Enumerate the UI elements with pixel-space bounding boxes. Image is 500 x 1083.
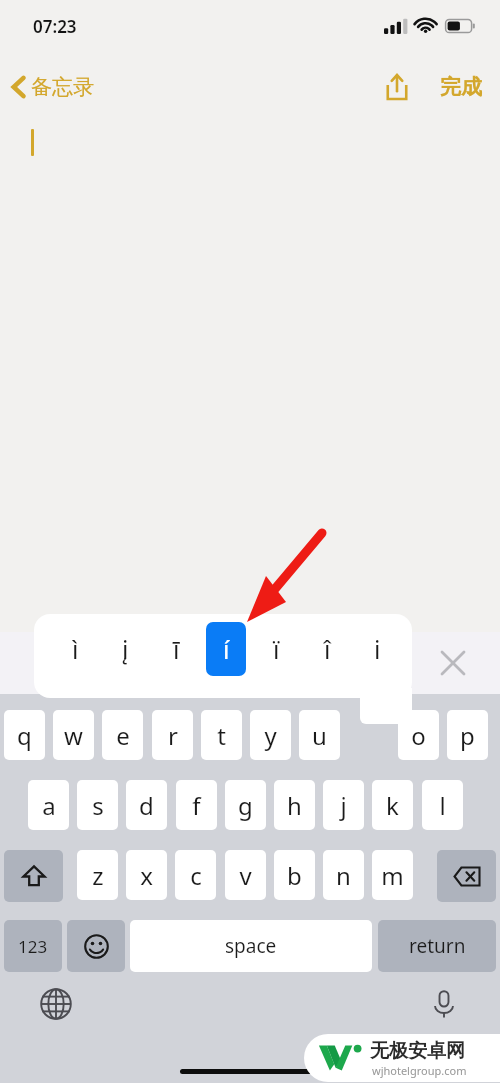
button[interactable]: Checklist bbox=[208, 644, 247, 683]
button[interactable]: k bbox=[372, 780, 413, 830]
button[interactable]: c bbox=[175, 850, 216, 900]
button[interactable]: Switch keyboard bbox=[36, 984, 76, 1024]
staticText: q bbox=[17, 719, 32, 752]
staticText: j bbox=[340, 789, 347, 822]
staticText: 完成 bbox=[440, 74, 482, 100]
button[interactable]: Table bbox=[56, 645, 98, 681]
button[interactable]: 完成 bbox=[436, 70, 486, 104]
staticText: f bbox=[192, 789, 201, 822]
staticText: k bbox=[386, 789, 399, 822]
staticText: o bbox=[411, 719, 426, 752]
staticText: s bbox=[92, 789, 104, 822]
button[interactable]: Share bbox=[380, 68, 414, 106]
staticText: u bbox=[312, 719, 327, 752]
button[interactable]: ī bbox=[156, 622, 196, 676]
staticText: ì bbox=[72, 632, 79, 666]
staticText: í bbox=[223, 632, 230, 666]
staticText: į bbox=[122, 632, 129, 666]
staticText: 07:23 bbox=[33, 15, 77, 38]
button[interactable]: space bbox=[130, 920, 372, 972]
button[interactable]: y bbox=[250, 710, 291, 760]
button[interactable]: h bbox=[274, 780, 315, 830]
staticText: z bbox=[92, 859, 104, 892]
button[interactable]: w bbox=[53, 710, 94, 760]
staticText: ï bbox=[273, 632, 280, 666]
button[interactable]: l bbox=[422, 780, 463, 830]
staticText: v bbox=[239, 859, 252, 892]
staticText: e bbox=[116, 719, 130, 752]
button[interactable]: s bbox=[77, 780, 118, 830]
staticText: wjhotelgroup.com bbox=[372, 1063, 467, 1078]
staticText: x bbox=[140, 859, 153, 892]
button[interactable]: Shift bbox=[4, 850, 63, 902]
button[interactable]: Dictation bbox=[424, 984, 464, 1024]
button[interactable]: Markup bbox=[356, 643, 396, 683]
staticText: w bbox=[64, 719, 83, 752]
button[interactable]: t bbox=[201, 710, 242, 760]
button[interactable]: v bbox=[225, 850, 266, 900]
button[interactable]: q bbox=[4, 710, 45, 760]
button[interactable]: Emoji bbox=[67, 920, 125, 972]
button[interactable]: u bbox=[299, 710, 340, 760]
button[interactable]: e bbox=[102, 710, 143, 760]
button[interactable]: r bbox=[152, 710, 193, 760]
staticText: 123 bbox=[18, 935, 48, 958]
button[interactable]: i bbox=[357, 622, 397, 676]
button[interactable]: í bbox=[206, 622, 246, 676]
button[interactable]: n bbox=[323, 850, 364, 900]
button[interactable]: b bbox=[274, 850, 315, 900]
staticText: i bbox=[374, 632, 381, 666]
button[interactable]: į bbox=[105, 622, 145, 676]
staticText: l bbox=[439, 789, 446, 822]
button[interactable]: p bbox=[447, 710, 488, 760]
staticText: n bbox=[336, 859, 351, 892]
button[interactable]: m bbox=[372, 850, 413, 900]
button[interactable] bbox=[348, 710, 389, 760]
staticText: t bbox=[217, 719, 226, 752]
button[interactable]: 备忘录 bbox=[8, 70, 98, 104]
staticText: r bbox=[168, 719, 178, 752]
button[interactable]: return bbox=[378, 920, 496, 972]
button[interactable]: d bbox=[126, 780, 167, 830]
staticText: d bbox=[139, 789, 154, 822]
button[interactable]: j bbox=[323, 780, 364, 830]
button[interactable]: î bbox=[307, 622, 347, 676]
staticText: m bbox=[381, 859, 404, 892]
button[interactable]: g bbox=[225, 780, 266, 830]
button[interactable]: f bbox=[176, 780, 217, 830]
button[interactable]: Close bbox=[434, 644, 472, 682]
button[interactable]: ï bbox=[256, 622, 296, 676]
staticText: b bbox=[287, 859, 302, 892]
button[interactable]: Aa bbox=[131, 640, 174, 686]
staticText: g bbox=[238, 789, 253, 822]
button[interactable]: z bbox=[77, 850, 118, 900]
staticText: space bbox=[225, 933, 277, 959]
button[interactable]: o bbox=[398, 710, 439, 760]
button[interactable]: 123 bbox=[4, 920, 62, 972]
staticText: a bbox=[42, 789, 56, 822]
staticText: ī bbox=[173, 632, 180, 666]
staticText: 无极安卓网 bbox=[370, 1039, 465, 1063]
button[interactable]: x bbox=[126, 850, 167, 900]
staticText: return bbox=[409, 933, 466, 959]
staticText: h bbox=[287, 789, 302, 822]
staticText: p bbox=[460, 719, 475, 752]
staticText: y bbox=[264, 719, 277, 752]
button[interactable]: a bbox=[28, 780, 69, 830]
staticText: î bbox=[324, 632, 331, 666]
button[interactable]: ì bbox=[55, 622, 95, 676]
staticText: c bbox=[190, 859, 202, 892]
staticText: 备忘录 bbox=[31, 74, 94, 100]
button[interactable]: Backspace bbox=[437, 850, 496, 902]
